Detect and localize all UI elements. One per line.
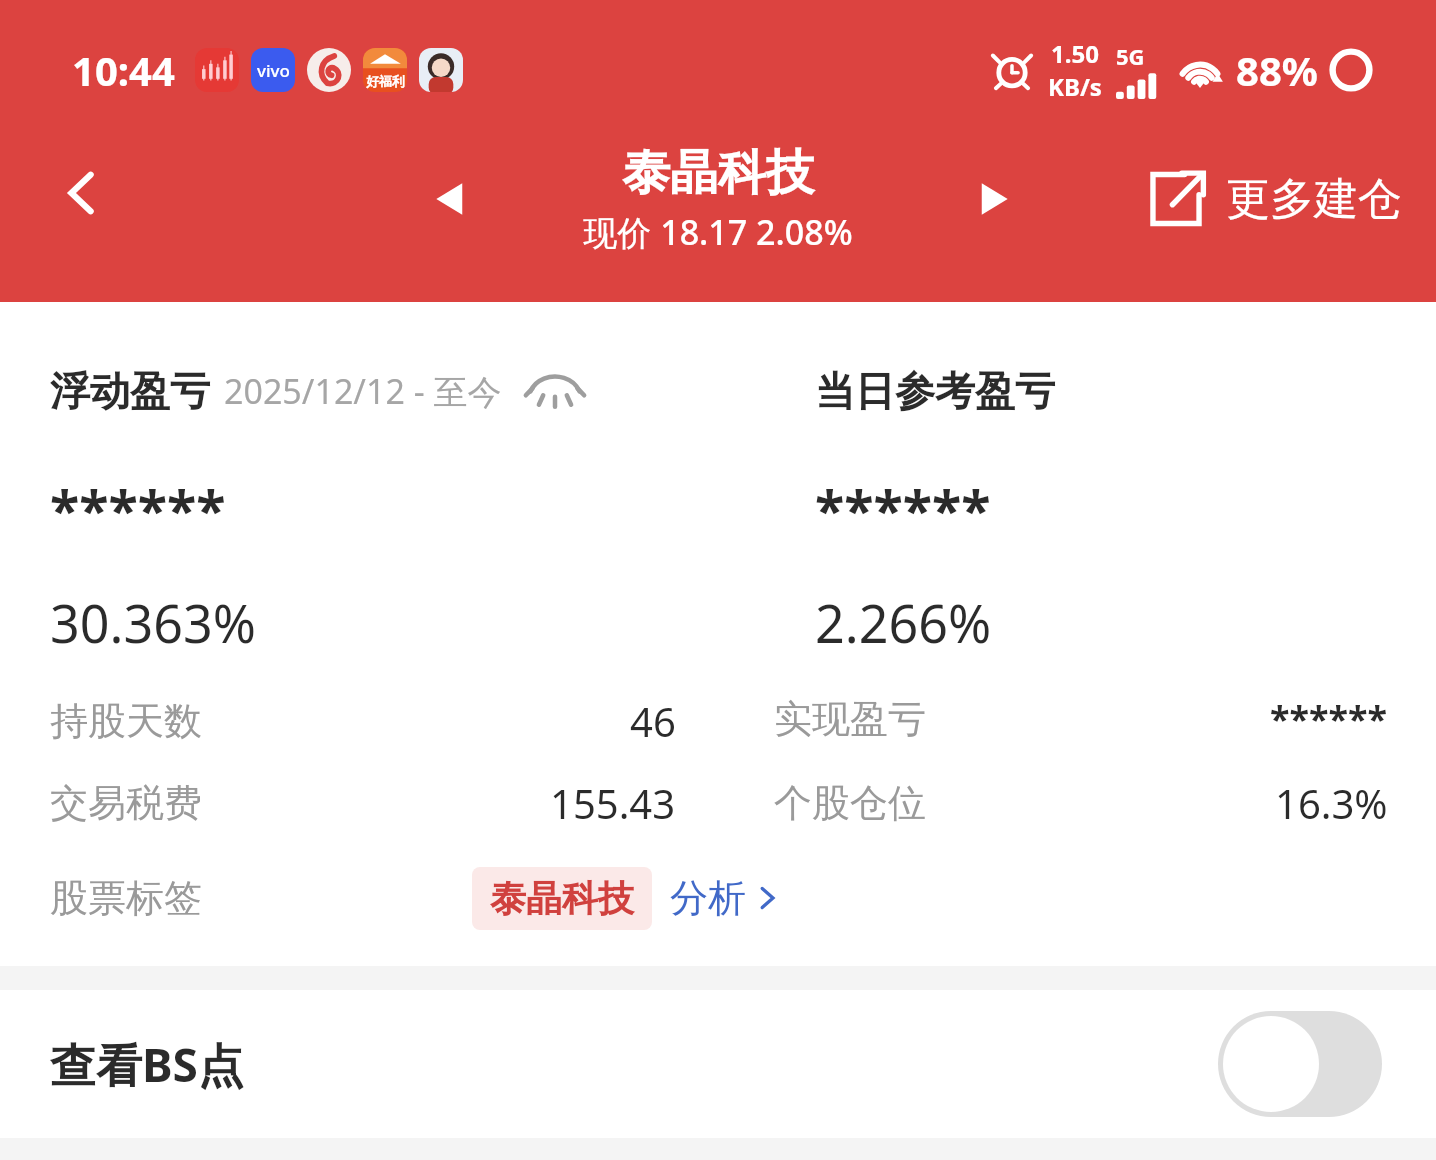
staticText: 分析 (670, 874, 746, 922)
button[interactable]: 泰晶科技 (498, 143, 938, 255)
staticText: 88% (1236, 43, 1318, 97)
staticText: 30.363% (50, 587, 256, 658)
staticText: 2.266% (815, 587, 992, 658)
staticText: KB/s (1048, 70, 1102, 103)
button[interactable]: Toggle BS points (1218, 1011, 1382, 1117)
button[interactable]: 更多建仓 (1140, 163, 1402, 235)
staticText: ****** (50, 472, 226, 546)
button[interactable]: Back (40, 151, 124, 235)
button[interactable]: 交易税费 (50, 776, 676, 830)
staticText: ****** (815, 472, 991, 546)
staticText: 查看BS点 (50, 1033, 244, 1096)
button[interactable]: 个股仓位 (774, 776, 1388, 830)
staticText: 5G (1116, 41, 1145, 71)
button[interactable]: 实现盈亏 (774, 694, 1388, 743)
staticText: 持股天数 (50, 697, 202, 745)
button[interactable]: 分析 (670, 874, 782, 922)
staticText: 浮动盈亏 (50, 366, 210, 416)
staticText: 46 (630, 694, 676, 748)
button[interactable]: 当日参考盈亏 (815, 366, 1055, 416)
button[interactable]: 泰晶科技 (472, 867, 652, 930)
staticText: 16.3% (1275, 776, 1388, 830)
staticText: 实现盈亏 (774, 695, 926, 743)
staticText: 股票标签 (50, 874, 202, 922)
staticText: 交易税费 (50, 779, 202, 827)
staticText: 泰晶科技 (622, 143, 814, 203)
staticText: 155.43 (550, 776, 676, 830)
staticText: vivo (257, 59, 290, 82)
staticText: 10:44 (72, 43, 175, 97)
button[interactable]: 持股天数 (50, 694, 676, 748)
button[interactable]: Next stock (956, 161, 1032, 237)
staticText: 个股仓位 (774, 779, 926, 827)
staticText: 现价 18.17 2.08% (583, 209, 853, 255)
staticText: 2025/12/12 - 至今 (224, 368, 502, 414)
staticText: 好福利 (366, 73, 405, 89)
button[interactable]: Previous stock (412, 161, 488, 237)
staticText: ****** (1270, 694, 1388, 743)
staticText: 更多建仓 (1226, 172, 1402, 227)
button[interactable]: 浮动盈亏 (50, 366, 586, 416)
staticText: 泰晶科技 (490, 876, 634, 921)
button[interactable]: 查看BS点 (0, 990, 1436, 1138)
staticText: 1.50 (1051, 37, 1099, 70)
